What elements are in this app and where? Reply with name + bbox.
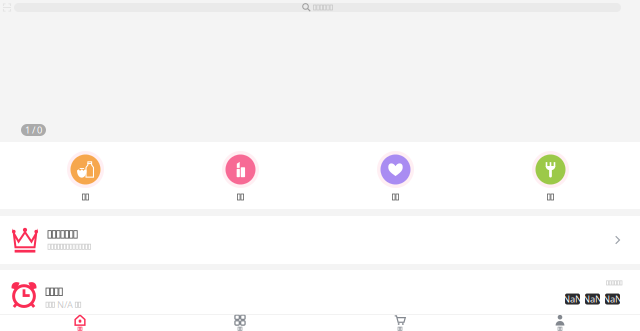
- staticText: 1 / 0: [25, 124, 42, 136]
- button[interactable]: Cart: [320, 314, 480, 331]
- button[interactable]: Category: [8, 148, 163, 203]
- button[interactable]: Category: [318, 148, 473, 203]
- staticText: N/A: [57, 299, 73, 311]
- staticText: NaN: [583, 293, 602, 305]
- button[interactable]: Categories: [160, 314, 320, 331]
- button[interactable]: Scan code: [0, 0, 14, 15]
- button[interactable]: Search: [14, 3, 621, 12]
- staticText: NaN: [563, 293, 582, 305]
- button[interactable]: Profile: [480, 314, 640, 331]
- staticText: NaN: [603, 293, 622, 305]
- button[interactable]: Category: [473, 148, 628, 203]
- button[interactable]: Category: [163, 148, 318, 203]
- button[interactable]: N/A: [0, 270, 640, 314]
- button[interactable]: Home: [0, 314, 160, 331]
- button[interactable]: [0, 216, 640, 264]
